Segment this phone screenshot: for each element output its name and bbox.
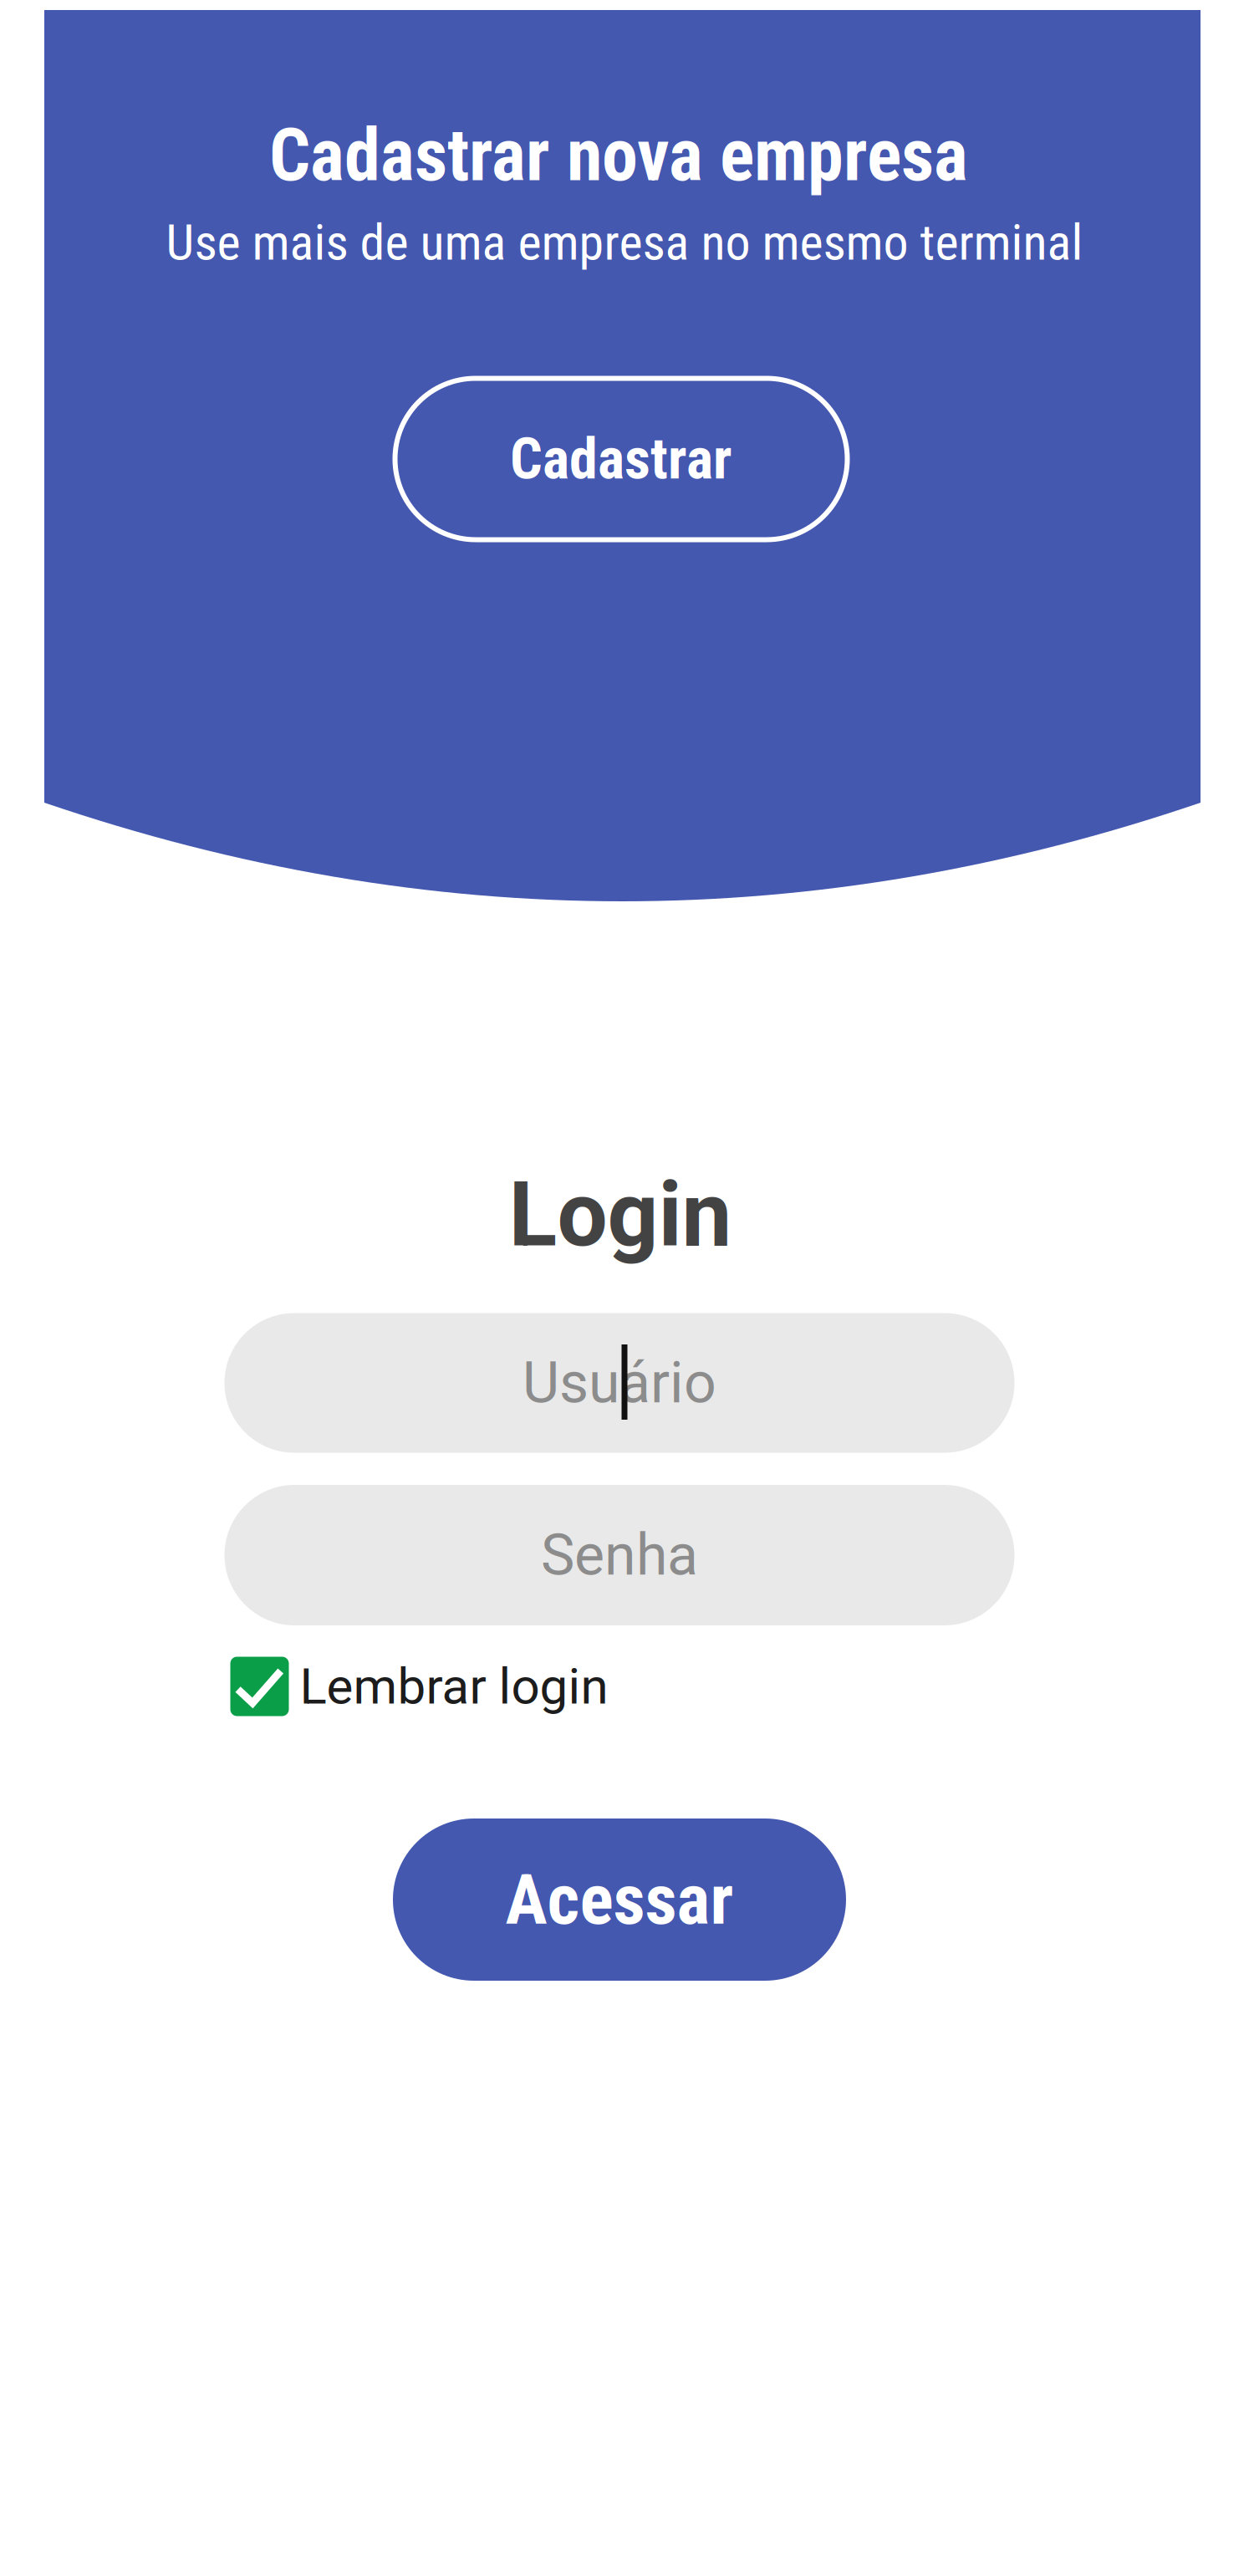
- staticText: Senha: [541, 1522, 698, 1588]
- button[interactable]: Usuário: [224, 1313, 1014, 1453]
- button[interactable]: Acessar: [393, 1819, 846, 1981]
- staticText: Usuário: [522, 1350, 716, 1416]
- staticText: Use mais de uma empresa no mesmo termina…: [166, 213, 1083, 272]
- staticText: Acessar: [505, 1858, 734, 1941]
- button[interactable]: Cadastrar: [395, 378, 847, 540]
- button[interactable]: Lembrar login: [230, 1649, 1020, 1724]
- staticText: Cadastrar nova empresa: [269, 113, 968, 198]
- staticText: Cadastrar: [510, 426, 732, 492]
- staticText: Lembrar login: [300, 1657, 608, 1716]
- staticText: Login: [509, 1163, 732, 1267]
- button[interactable]: Senha: [224, 1485, 1014, 1625]
